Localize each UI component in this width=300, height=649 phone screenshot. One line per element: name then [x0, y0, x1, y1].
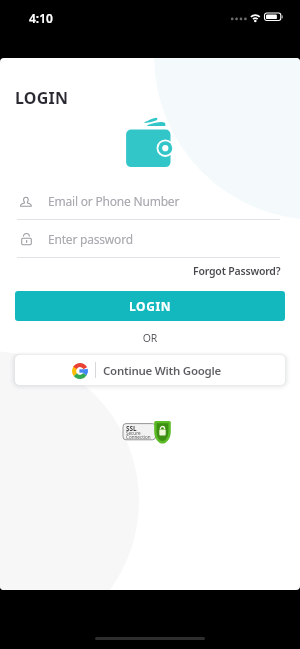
staticText: LOGIN — [129, 298, 172, 314]
staticText: LOGIN — [15, 87, 69, 109]
staticText: Continue With Google — [103, 363, 222, 379]
other: Signal, wifi and battery status — [228, 10, 288, 26]
staticText: Forgot Password? — [193, 264, 281, 278]
staticText: OR — [0, 331, 300, 345]
button[interactable]: Continue With Google — [15, 355, 285, 385]
staticText: Connection — [126, 434, 151, 440]
button[interactable]: LOGIN — [15, 291, 285, 321]
staticText: Secure — [126, 430, 141, 436]
staticText: SSL — [126, 424, 137, 433]
staticText: 4:10 — [29, 10, 53, 26]
button[interactable]: Forgot Password? — [180, 263, 281, 279]
staticText: Enter password — [48, 231, 133, 247]
staticText: Email or Phone Number — [48, 193, 180, 209]
